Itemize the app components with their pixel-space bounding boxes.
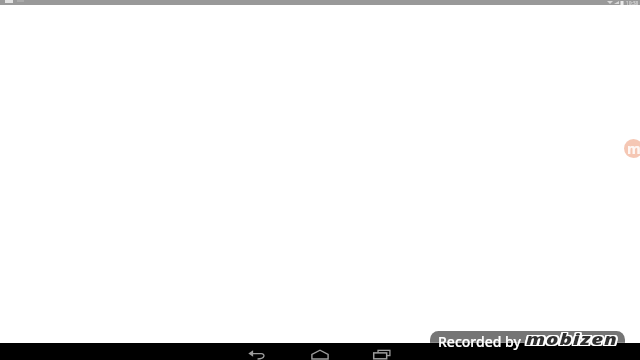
staticText: 10:38 xyxy=(626,0,639,5)
button[interactable]: Recent apps xyxy=(364,344,400,360)
staticText: mobizen xyxy=(525,328,617,348)
staticText: mobizen xyxy=(525,329,617,349)
staticText: mobizen xyxy=(526,330,618,350)
staticText: m xyxy=(627,139,640,158)
staticText: mobizen xyxy=(526,328,618,348)
button[interactable]: Back xyxy=(238,344,274,360)
staticText: Recorded by xyxy=(438,332,521,351)
staticText: mobizen xyxy=(525,330,617,350)
other: Status bar xyxy=(0,0,640,5)
staticText: mobizen xyxy=(527,329,620,349)
staticText: mobizen xyxy=(527,328,620,348)
staticText: mobizen xyxy=(526,329,618,349)
staticText: mobizen xyxy=(527,330,620,350)
button[interactable]: Home xyxy=(302,344,338,360)
button[interactable]: Mobizen recorder xyxy=(624,139,640,158)
